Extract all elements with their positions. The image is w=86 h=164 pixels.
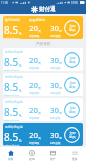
staticText: 8.5 xyxy=(4,55,19,69)
staticText: 20 xyxy=(29,23,38,34)
staticText: 元 xyxy=(59,61,62,65)
button[interactable]: 发现 xyxy=(21,147,42,164)
staticText: 预期年化收益 xyxy=(4,144,20,146)
staticText: 30 xyxy=(50,80,59,91)
staticText: % xyxy=(19,114,22,118)
staticText: 100% xyxy=(71,1,79,5)
staticText: 起投金额 xyxy=(50,141,61,144)
staticText: 投资期限 xyxy=(29,91,40,94)
staticText: 20 xyxy=(29,80,38,91)
button[interactable]: 预期年化收益 xyxy=(3,123,83,146)
button[interactable]: 预期年化收益 xyxy=(3,73,83,96)
staticText: % xyxy=(19,64,22,68)
staticText: 产品专区 xyxy=(36,42,51,47)
staticText: 20 xyxy=(29,130,38,141)
staticText: 天 xyxy=(38,136,41,140)
staticText: 预期年化收益 xyxy=(4,37,20,39)
staticText: 起投金额 xyxy=(50,34,61,37)
staticText: 30 xyxy=(50,105,59,116)
staticText: 立即 购买 xyxy=(69,56,76,64)
staticText: 预期年化收益 xyxy=(5,100,23,104)
staticText: 天 xyxy=(38,86,41,90)
staticText: 天 xyxy=(38,111,41,115)
staticText: 投资期限 xyxy=(29,34,40,37)
staticText: 财付通 xyxy=(39,6,56,13)
staticText: 预期年化收益 xyxy=(4,94,20,96)
staticText: 数字特强版 xyxy=(5,18,20,22)
staticText: 11:05 xyxy=(1,1,9,5)
staticText: 起投金额 xyxy=(50,91,61,94)
button[interactable]: 更多 xyxy=(64,147,86,164)
button[interactable]: 预期年化收益 xyxy=(3,48,83,71)
button[interactable]: 数字特强版 xyxy=(3,16,83,39)
staticText: 30 xyxy=(50,23,59,34)
staticText: 限量抢购中 xyxy=(29,18,45,22)
staticText: 8.5 xyxy=(4,80,19,94)
staticText: 立即 购买 xyxy=(69,106,76,114)
staticText: 更多 xyxy=(72,157,78,161)
staticText: 投资期限 xyxy=(29,141,40,144)
staticText: 资产 xyxy=(50,157,56,161)
staticText: 预期年化收益 xyxy=(4,69,20,71)
staticText: 起投金额 xyxy=(50,116,61,119)
staticText: 元 xyxy=(59,29,62,33)
staticText: 30 xyxy=(50,55,59,66)
staticText: 元 xyxy=(59,136,62,140)
staticText: 30 xyxy=(50,130,59,141)
staticText: 投资期限 xyxy=(29,116,40,119)
staticText: 立即 购买 xyxy=(69,24,76,32)
staticText: 天 xyxy=(38,61,41,65)
button[interactable]: 首页 xyxy=(0,147,21,164)
staticText: 预期年化收益 xyxy=(4,119,20,121)
staticText: 预期年化收益 xyxy=(5,50,23,54)
staticText: 投资期限 xyxy=(29,66,40,69)
staticText: 8.5 xyxy=(4,130,19,144)
staticText: 立即 购买 xyxy=(69,131,76,139)
staticText: 起投金额 xyxy=(50,66,61,69)
staticText: 20 xyxy=(29,55,38,66)
staticText: 20 xyxy=(29,105,38,116)
staticText: 预期年化收益 xyxy=(5,125,23,129)
staticText: 8.5 xyxy=(4,23,19,37)
staticText: 天 xyxy=(38,29,41,33)
staticText: 发现 xyxy=(29,157,35,161)
staticText: 首页 xyxy=(8,157,14,161)
staticText: 元 xyxy=(59,86,62,90)
button[interactable]: 资产 xyxy=(42,147,64,164)
button[interactable]: 预期年化收益 xyxy=(3,98,83,121)
staticText: % xyxy=(19,32,22,36)
staticText: 预期年化收益 xyxy=(5,75,23,79)
staticText: % xyxy=(19,139,22,143)
staticText: % xyxy=(19,89,22,93)
staticText: 立即 购买 xyxy=(69,81,76,89)
staticText: 元 xyxy=(59,111,62,115)
staticText: 8.5 xyxy=(4,105,19,119)
